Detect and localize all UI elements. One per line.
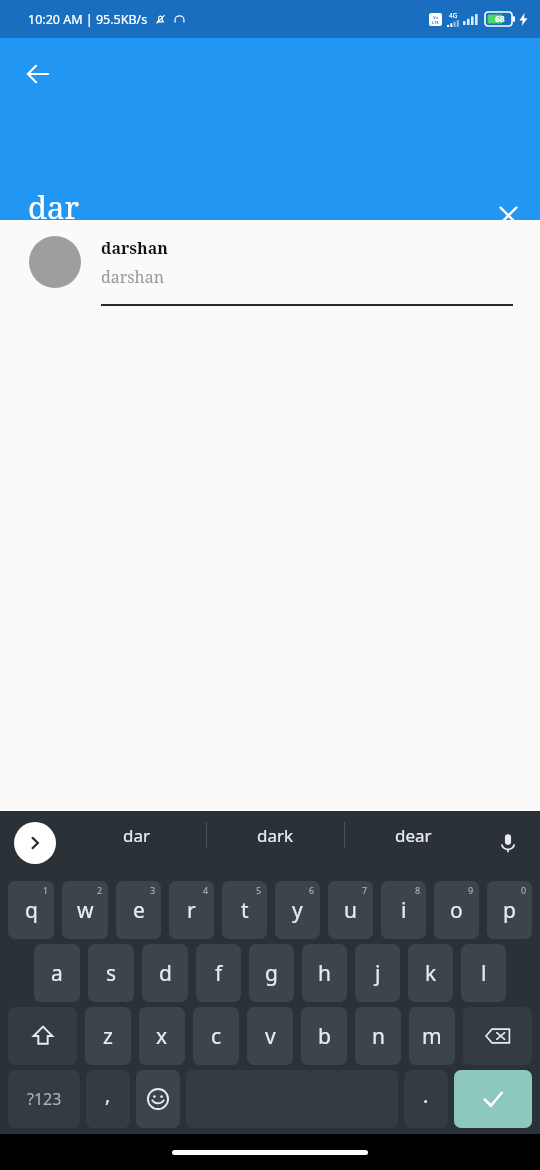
staticText: p xyxy=(503,896,516,925)
staticText: b xyxy=(318,1022,331,1051)
button[interactable]: More suggestions xyxy=(14,822,56,864)
staticText: j xyxy=(375,959,381,988)
button[interactable]: l xyxy=(461,944,506,1002)
staticText: darshan xyxy=(101,237,168,259)
staticText: y xyxy=(292,896,303,925)
staticText: k xyxy=(425,959,437,988)
staticText: 68 xyxy=(495,13,505,25)
staticText: d xyxy=(159,959,172,988)
staticText: m xyxy=(422,1022,442,1051)
staticText: z xyxy=(103,1022,113,1051)
staticText: u xyxy=(344,896,357,925)
button[interactable]: y xyxy=(275,881,320,939)
button[interactable]: ?123 xyxy=(8,1070,80,1128)
button[interactable]: w xyxy=(62,881,108,939)
staticText: n xyxy=(372,1022,385,1051)
staticText: 4G xyxy=(449,11,458,20)
button[interactable]: t xyxy=(222,881,267,939)
staticText: c xyxy=(211,1022,222,1051)
button[interactable]: m xyxy=(409,1007,455,1065)
staticText: , xyxy=(105,1081,111,1108)
staticText: 5 xyxy=(256,884,262,896)
staticText: q xyxy=(25,896,38,925)
staticText: 7 xyxy=(362,884,368,896)
staticText: 3 xyxy=(150,884,156,896)
staticText: 8 xyxy=(415,884,421,896)
staticText: l xyxy=(481,959,487,988)
button[interactable]: f xyxy=(196,944,241,1002)
staticText: x xyxy=(156,1022,168,1051)
button[interactable]: Emoji xyxy=(136,1070,180,1128)
button[interactable]: d xyxy=(142,944,188,1002)
button[interactable]: o xyxy=(434,881,479,939)
button[interactable]: k xyxy=(408,944,453,1002)
staticText: v xyxy=(265,1022,276,1051)
button[interactable]: Enter xyxy=(454,1070,532,1128)
button[interactable]: , xyxy=(86,1070,130,1128)
button[interactable]: i xyxy=(381,881,426,939)
button[interactable]: Backspace xyxy=(463,1007,532,1065)
staticText: 10:20 AM | 95.5KB/s xyxy=(28,11,148,28)
staticText: ?123 xyxy=(27,1088,62,1110)
staticText: w xyxy=(77,896,94,925)
button[interactable]: b xyxy=(301,1007,347,1065)
button[interactable]: e xyxy=(116,881,161,939)
staticText: s xyxy=(106,959,117,988)
button[interactable]: p xyxy=(487,881,532,939)
button[interactable]: x xyxy=(139,1007,185,1065)
button[interactable]: dark xyxy=(207,811,344,859)
staticText: Vo xyxy=(433,15,439,20)
staticText: e xyxy=(133,896,145,925)
button[interactable]: q xyxy=(8,881,54,939)
button[interactable]: s xyxy=(88,944,134,1002)
button[interactable]: v xyxy=(247,1007,293,1065)
staticText: dar xyxy=(123,824,151,847)
staticText: dark xyxy=(257,824,294,847)
staticText: LTE xyxy=(432,20,439,25)
button[interactable]: r xyxy=(169,881,214,939)
staticText: 9 xyxy=(468,884,474,896)
staticText: 4 xyxy=(203,884,209,896)
button[interactable]: a xyxy=(34,944,80,1002)
staticText: i xyxy=(401,896,407,925)
button[interactable]: c xyxy=(193,1007,239,1065)
button[interactable]: Back xyxy=(12,48,64,100)
staticText: . xyxy=(423,1082,429,1109)
staticText: h xyxy=(318,959,331,988)
staticText: darshan xyxy=(101,266,165,288)
button[interactable]: g xyxy=(249,944,294,1002)
staticText: 1 xyxy=(43,884,49,896)
staticText: g xyxy=(265,959,278,988)
button[interactable]: dear xyxy=(345,811,482,859)
button[interactable]: . xyxy=(404,1070,448,1128)
button[interactable]: z xyxy=(85,1007,131,1065)
button[interactable]: h xyxy=(302,944,347,1002)
button[interactable]: Voice input xyxy=(486,821,530,865)
button[interactable]: darshan xyxy=(0,220,540,304)
staticText: f xyxy=(215,959,223,988)
staticText: a xyxy=(51,959,63,988)
staticText: r xyxy=(187,896,196,925)
button[interactable]: Shift xyxy=(8,1007,77,1065)
staticText: dar xyxy=(28,186,80,228)
button[interactable]: n xyxy=(355,1007,401,1065)
staticText: t xyxy=(241,896,249,925)
button[interactable]: Clear search xyxy=(484,191,532,239)
staticText: 2 xyxy=(97,884,103,896)
button[interactable]: dar xyxy=(68,811,206,859)
staticText: dear xyxy=(395,824,432,847)
button[interactable]: j xyxy=(355,944,400,1002)
button[interactable]: u xyxy=(328,881,373,939)
staticText: 0 xyxy=(521,884,527,896)
staticText: 6 xyxy=(309,884,315,896)
staticText: o xyxy=(450,896,463,925)
